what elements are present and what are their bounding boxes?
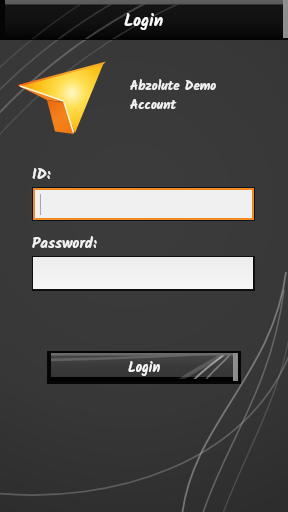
staticText: ID: bbox=[32, 163, 51, 187]
button[interactable] bbox=[35, 190, 252, 218]
staticText: Password: bbox=[32, 232, 97, 256]
staticText: Login bbox=[124, 8, 164, 35]
button[interactable]: Login bbox=[47, 351, 241, 384]
staticText: Abzolute Demo Account bbox=[130, 76, 217, 116]
staticText: Login bbox=[128, 357, 161, 379]
